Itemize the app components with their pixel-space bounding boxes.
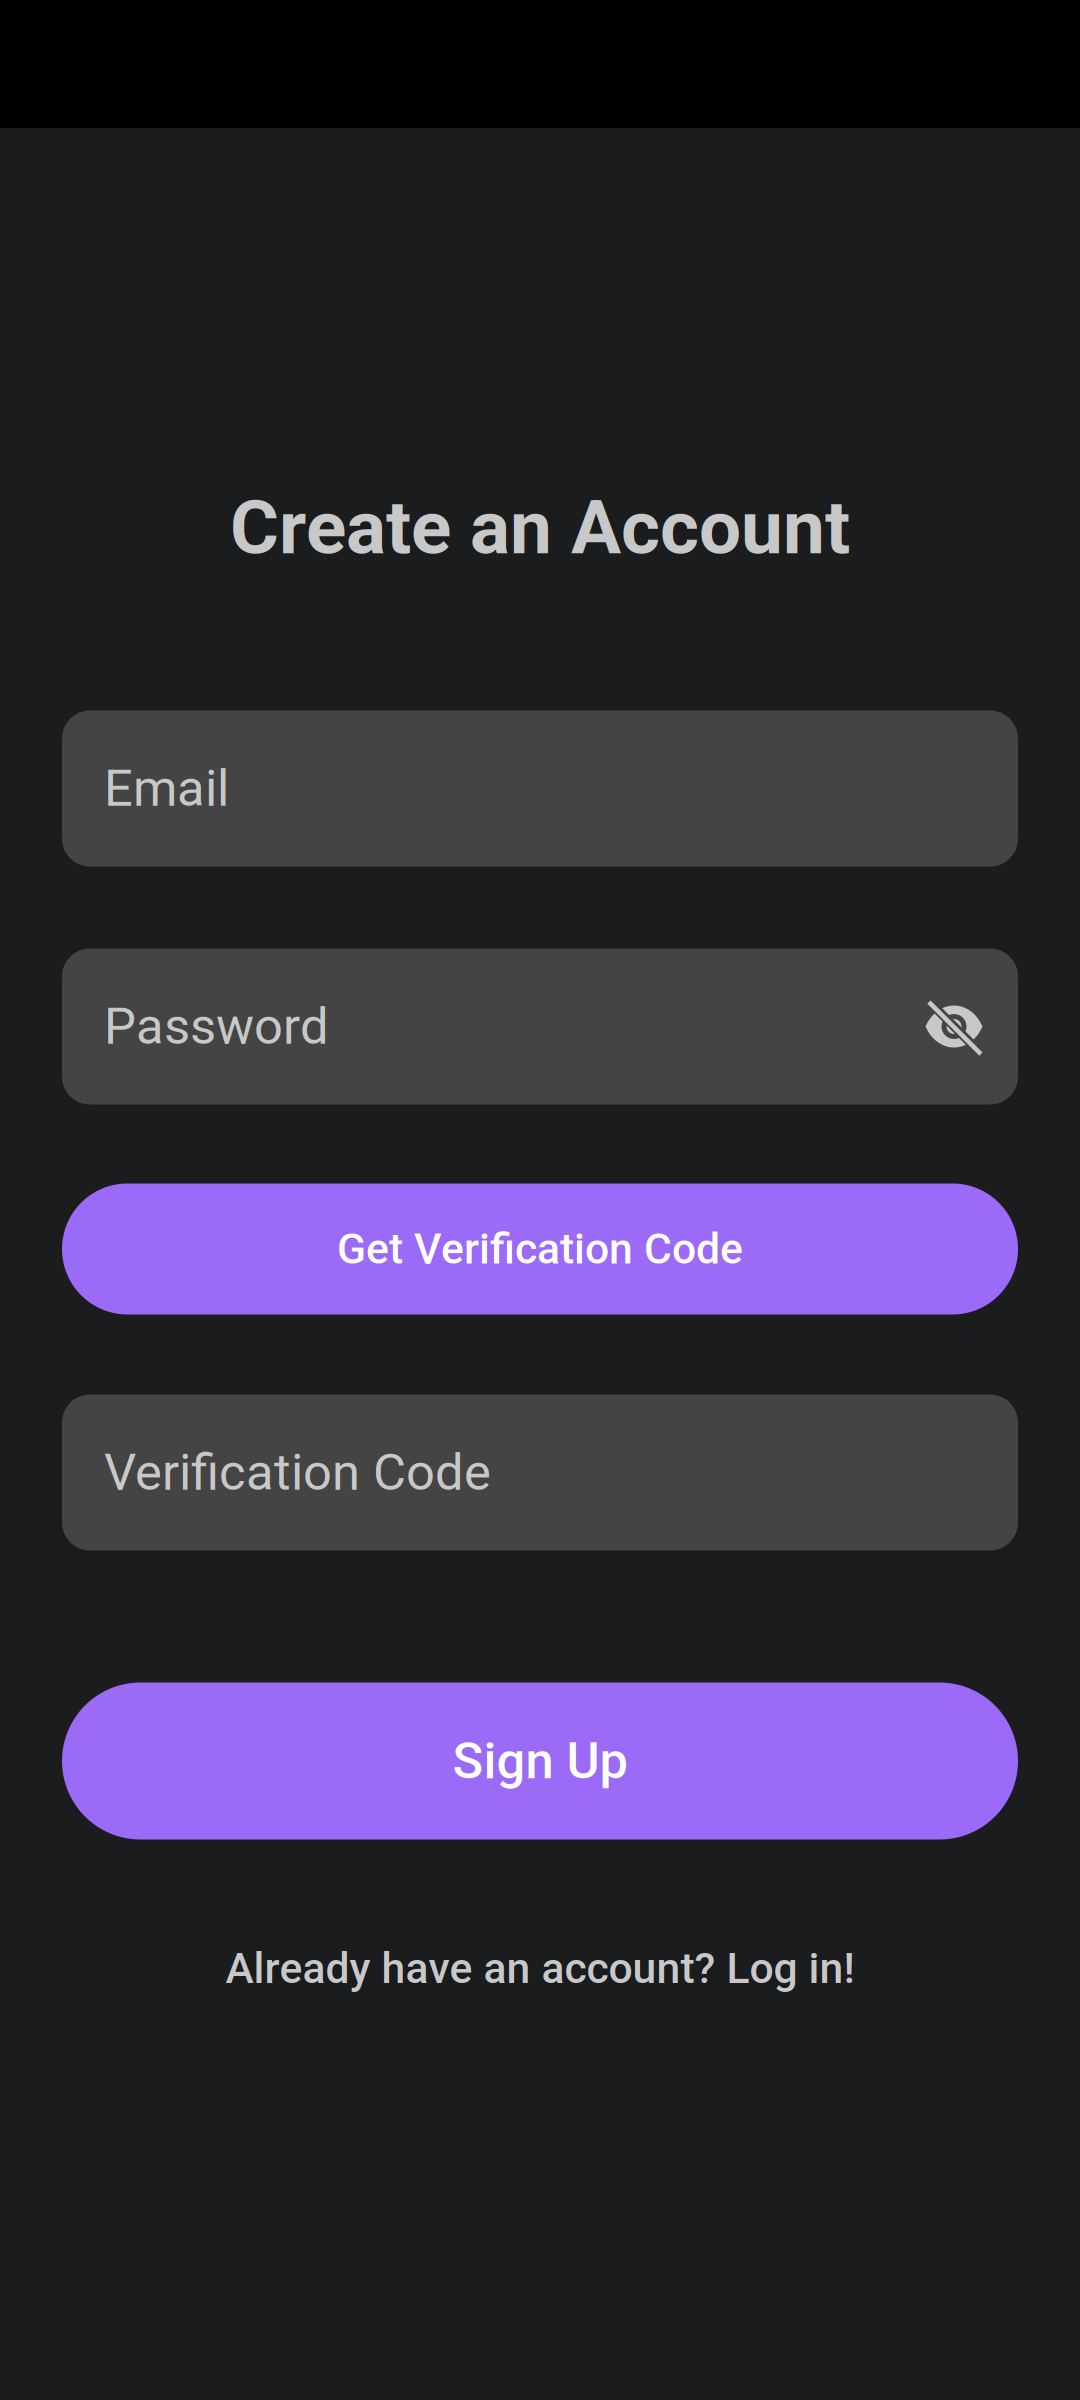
staticText: Create an Account bbox=[230, 484, 850, 571]
button[interactable]: Sign Up bbox=[62, 1682, 1018, 1839]
button[interactable]: Verification Code bbox=[62, 1394, 1018, 1550]
button[interactable]: Show password bbox=[925, 1000, 983, 1052]
button[interactable]: Get Verification Code bbox=[62, 1183, 1018, 1314]
staticText: Already have an account? Log in! bbox=[225, 1943, 854, 1993]
button[interactable]: Password bbox=[62, 948, 1018, 1104]
button[interactable]: Already have an account? Log in! bbox=[225, 1943, 854, 1993]
staticText: Password bbox=[104, 997, 329, 1056]
staticText: Email bbox=[104, 759, 229, 818]
button[interactable]: Email bbox=[62, 710, 1018, 866]
staticText: Get Verification Code bbox=[337, 1224, 743, 1274]
staticText: Sign Up bbox=[452, 1731, 627, 1791]
staticText: Verification Code bbox=[104, 1443, 491, 1502]
